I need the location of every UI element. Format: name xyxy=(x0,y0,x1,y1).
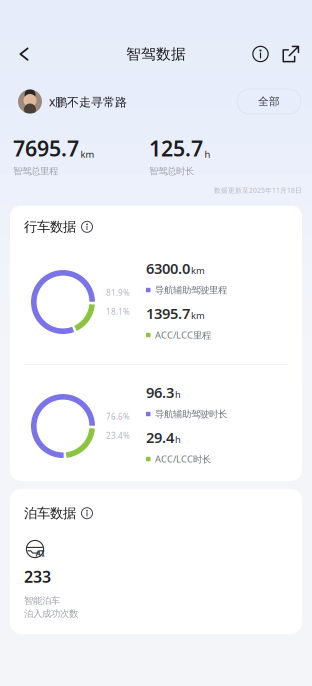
staticText: 96.3 xyxy=(146,382,174,402)
staticText: 7695.7 xyxy=(13,134,79,162)
button[interactable]: Info xyxy=(81,507,93,519)
staticText: ACC/LCC时长 xyxy=(155,453,211,465)
staticText: h xyxy=(175,388,181,400)
button[interactable]: Share xyxy=(275,39,307,69)
staticText: 18.1% xyxy=(106,306,130,317)
staticText: 泊入成功次数 xyxy=(24,608,78,619)
staticText: 29.4 xyxy=(146,427,174,447)
staticText: 行车数据 xyxy=(24,219,76,235)
staticText: 全部 xyxy=(258,95,280,108)
staticText: x鹏不走寻常路 xyxy=(49,93,127,109)
staticText: 125.7 xyxy=(149,134,203,162)
button[interactable]: 全部 xyxy=(237,89,301,114)
staticText: km xyxy=(191,309,205,321)
staticText: 导航辅助驾驶里程 xyxy=(155,284,227,296)
staticText: AI xyxy=(36,548,45,559)
staticText: 泊车数据 xyxy=(24,505,76,521)
staticText: 智能泊车 xyxy=(24,595,60,606)
staticText: 智驾总时长 xyxy=(149,165,194,177)
staticText: h xyxy=(204,148,210,160)
button[interactable]: Back xyxy=(6,39,42,69)
staticText: km xyxy=(191,264,205,276)
button[interactable]: Info xyxy=(81,221,93,233)
staticText: 数据更新至2025年11月18日 xyxy=(214,186,302,195)
staticText: 导航辅助驾驶时长 xyxy=(155,408,227,420)
staticText: 76.6% xyxy=(106,411,130,422)
staticText: 23.4% xyxy=(106,430,130,441)
staticText: 233 xyxy=(24,566,51,587)
staticText: ACC/LCC里程 xyxy=(155,329,211,341)
staticText: 智驾数据 xyxy=(126,45,186,63)
staticText: 1395.7 xyxy=(146,303,190,323)
staticText: 6300.0 xyxy=(146,258,190,278)
button[interactable]: Info xyxy=(246,39,275,69)
staticText: km xyxy=(80,148,94,160)
staticText: 81.9% xyxy=(106,287,130,298)
staticText: 智驾总里程 xyxy=(13,165,58,177)
staticText: h xyxy=(175,433,181,445)
